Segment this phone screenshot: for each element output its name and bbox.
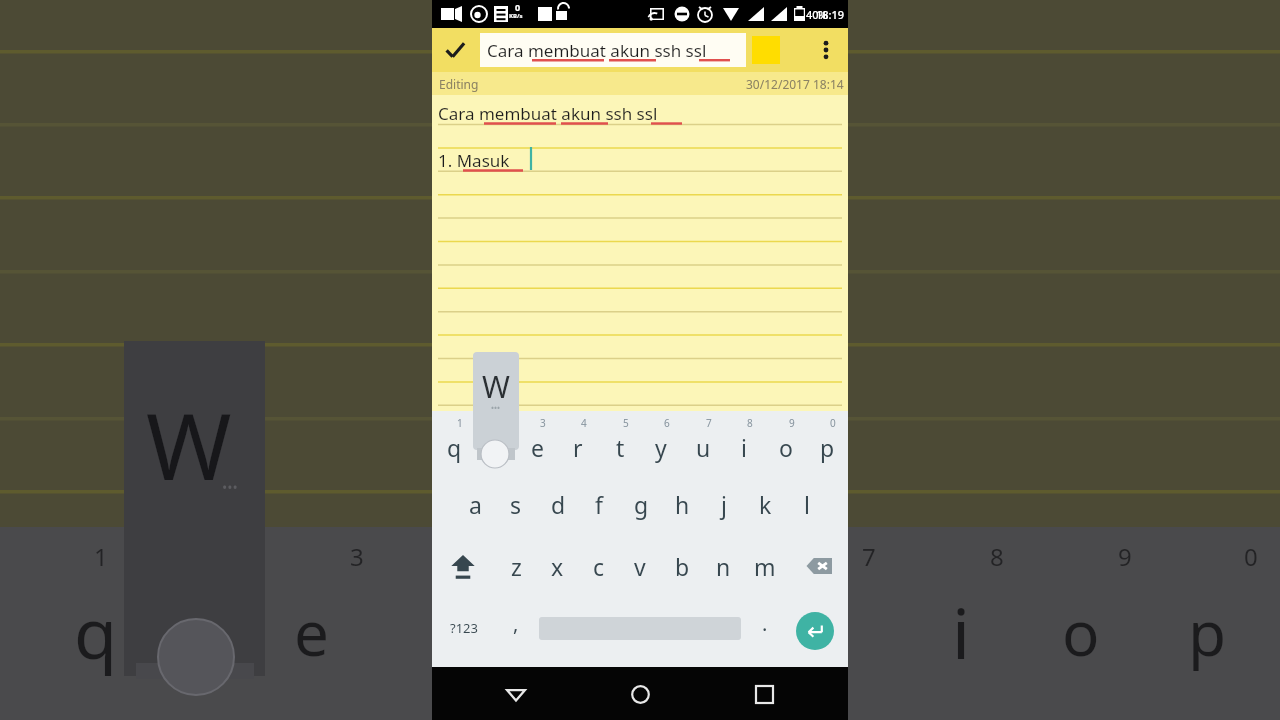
staticText: 40% (806, 7, 828, 22)
button[interactable]: z (495, 535, 537, 597)
button[interactable]: k (744, 473, 786, 535)
staticText: 0 (515, 1, 521, 13)
staticText: 4 (581, 416, 587, 430)
button[interactable]: Home (616, 670, 664, 718)
staticText: Cara membuat akun ssh ssl (438, 102, 658, 125)
staticText: j (721, 489, 727, 520)
staticText: t (616, 432, 625, 463)
button[interactable]: Save note (432, 28, 478, 72)
button[interactable]: m (744, 535, 786, 597)
staticText: g (634, 489, 649, 520)
staticText: l (804, 489, 810, 520)
staticText: 9 (1118, 540, 1132, 573)
button[interactable]: , (496, 597, 536, 659)
staticText: n (716, 551, 731, 582)
staticText: y (655, 432, 667, 463)
button[interactable]: ?123 (434, 597, 494, 659)
button[interactable]: u (682, 411, 724, 473)
staticText: x (551, 551, 564, 582)
button[interactable]: f (578, 473, 620, 535)
staticText: f (595, 489, 603, 520)
button[interactable]: b (661, 535, 703, 597)
button[interactable]: t (599, 411, 641, 473)
button[interactable]: Backspace (794, 535, 844, 597)
button[interactable]: j (703, 473, 745, 535)
button[interactable]: d (537, 473, 579, 535)
button[interactable]: Shift (436, 535, 490, 597)
staticText: e (531, 432, 544, 463)
staticText: ••• (491, 402, 501, 413)
staticText: ?123 (450, 619, 478, 637)
button[interactable]: x (536, 535, 578, 597)
button[interactable]: q (433, 411, 475, 473)
button[interactable]: n (702, 535, 744, 597)
staticText: KB/s (509, 12, 523, 20)
staticText: 8 (747, 416, 753, 430)
button[interactable]: Enter (796, 612, 834, 650)
staticText: 3 (540, 416, 546, 430)
staticText: 1 (457, 416, 463, 430)
staticText: q (447, 432, 462, 463)
staticText: 8 (990, 540, 1004, 573)
staticText: q (74, 584, 118, 679)
staticText: , (513, 610, 519, 637)
button[interactable]: Back (492, 670, 540, 718)
button[interactable]: y (640, 411, 682, 473)
staticText: 5 (623, 416, 629, 430)
staticText: u (696, 432, 711, 463)
staticText: o (1062, 590, 1100, 674)
staticText: Cara membuat akun ssh ssl (487, 39, 707, 62)
staticText: 7 (706, 416, 712, 430)
staticText: Editing (439, 76, 479, 92)
button[interactable] (474, 411, 516, 473)
button[interactable]: p (806, 411, 848, 473)
staticText: z (511, 551, 522, 582)
staticText: 7 (862, 540, 876, 573)
staticText: i (952, 584, 971, 679)
staticText: p (820, 432, 835, 463)
button[interactable]: c (578, 535, 620, 597)
staticText: 18:19 (816, 7, 845, 22)
staticText: e (294, 590, 329, 674)
button[interactable]: g (620, 473, 662, 535)
button[interactable]: Cara membuat akun ssh ssl (480, 33, 746, 67)
staticText: r (573, 432, 583, 463)
staticText: p (1188, 590, 1227, 674)
staticText: W (482, 366, 510, 407)
button[interactable]: l (786, 473, 828, 535)
button[interactable]: o (765, 411, 807, 473)
button[interactable]: v (619, 535, 661, 597)
staticText: 30/12/2017 18:14 (746, 76, 844, 92)
staticText: s (510, 489, 522, 520)
staticText: d (551, 489, 566, 520)
button[interactable]: More options (804, 28, 848, 72)
button[interactable]: h (661, 473, 703, 535)
staticText: 1 (94, 540, 108, 573)
staticText: k (759, 489, 772, 520)
button[interactable]: s (495, 473, 537, 535)
button[interactable]: a (454, 473, 496, 535)
button[interactable]: Cara membuat akun ssh ssl (432, 95, 848, 411)
staticText: i (741, 432, 747, 463)
staticText: W (146, 382, 232, 507)
staticText: a (469, 489, 482, 520)
staticText: 1. Masuk (438, 149, 510, 172)
button[interactable]: i (723, 411, 765, 473)
button[interactable]: Space (536, 597, 744, 659)
button[interactable]: . (746, 597, 784, 659)
staticText: c (593, 551, 605, 582)
staticText: b (675, 551, 690, 582)
staticText: h (675, 489, 690, 520)
staticText: . (762, 610, 768, 637)
staticText: 9 (789, 416, 795, 430)
staticText: v (634, 551, 646, 582)
staticText: 0 (1244, 540, 1258, 573)
staticText: m (754, 551, 776, 582)
button[interactable]: Recent apps (740, 670, 788, 718)
button[interactable]: r (557, 411, 599, 473)
button[interactable]: e (516, 411, 558, 473)
staticText: 6 (664, 416, 670, 430)
staticText: o (779, 432, 793, 463)
staticText: 3 (350, 540, 364, 573)
